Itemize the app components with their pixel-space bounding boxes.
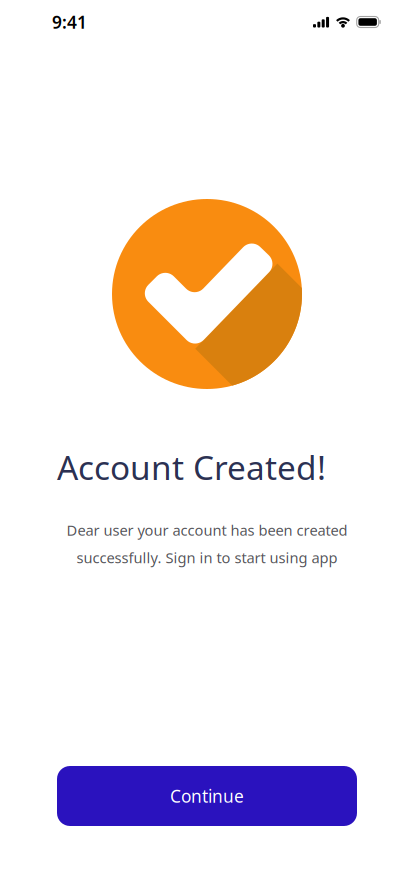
staticText: Account Created! — [57, 445, 326, 489]
staticText: Continue — [170, 784, 244, 807]
staticText: Dear user your account has been created — [66, 520, 347, 540]
button[interactable]: Continue — [57, 766, 357, 826]
staticText: successfully. Sign in to start using app — [76, 548, 337, 567]
staticText: 9:41 — [52, 10, 87, 33]
